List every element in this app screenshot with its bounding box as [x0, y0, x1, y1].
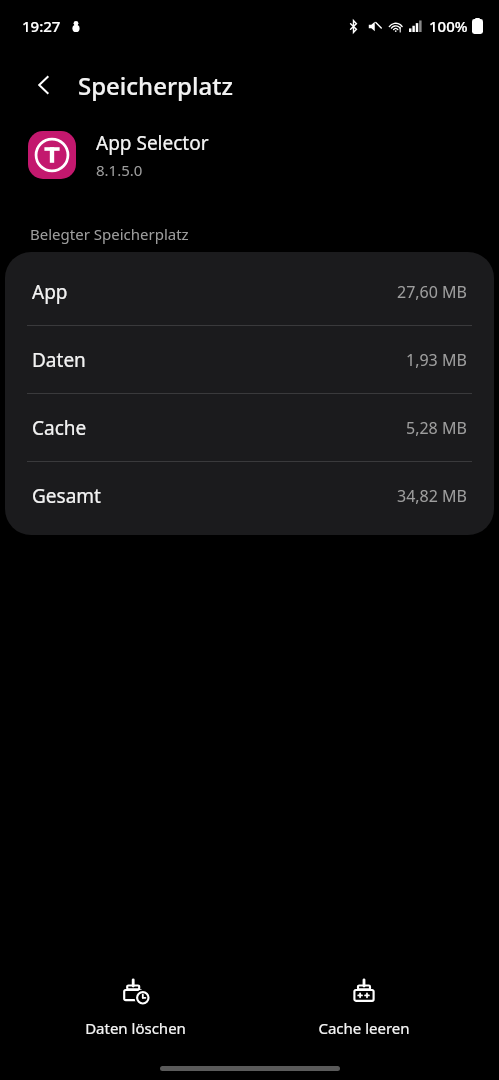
button[interactable]: Back: [24, 65, 64, 105]
button[interactable]: Cache: [5, 394, 494, 461]
staticText: App Selector: [96, 130, 209, 156]
staticText: 27,60 MB: [397, 281, 467, 303]
staticText: Cache leeren: [318, 1018, 410, 1038]
staticText: 5,28 MB: [406, 417, 467, 439]
staticText: Daten: [32, 347, 86, 373]
staticText: Speicherplatz: [78, 69, 233, 102]
staticText: App: [32, 279, 68, 305]
button[interactable]: Cache leeren: [269, 972, 459, 1044]
staticText: 8.1.5.0: [96, 160, 143, 180]
staticText: 100%: [429, 16, 468, 36]
button[interactable]: Daten löschen: [40, 972, 230, 1044]
staticText: 19:27: [22, 16, 61, 36]
staticText: Belegter Speicherplatz: [30, 224, 189, 244]
button[interactable]: Gesamt: [5, 462, 494, 529]
button[interactable]: App: [5, 258, 494, 325]
staticText: Daten löschen: [85, 1018, 186, 1038]
button[interactable]: Daten: [5, 326, 494, 393]
staticText: Cache: [32, 415, 87, 441]
staticText: 34,82 MB: [397, 485, 467, 507]
staticText: Gesamt: [32, 483, 101, 509]
staticText: 1,93 MB: [406, 349, 467, 371]
